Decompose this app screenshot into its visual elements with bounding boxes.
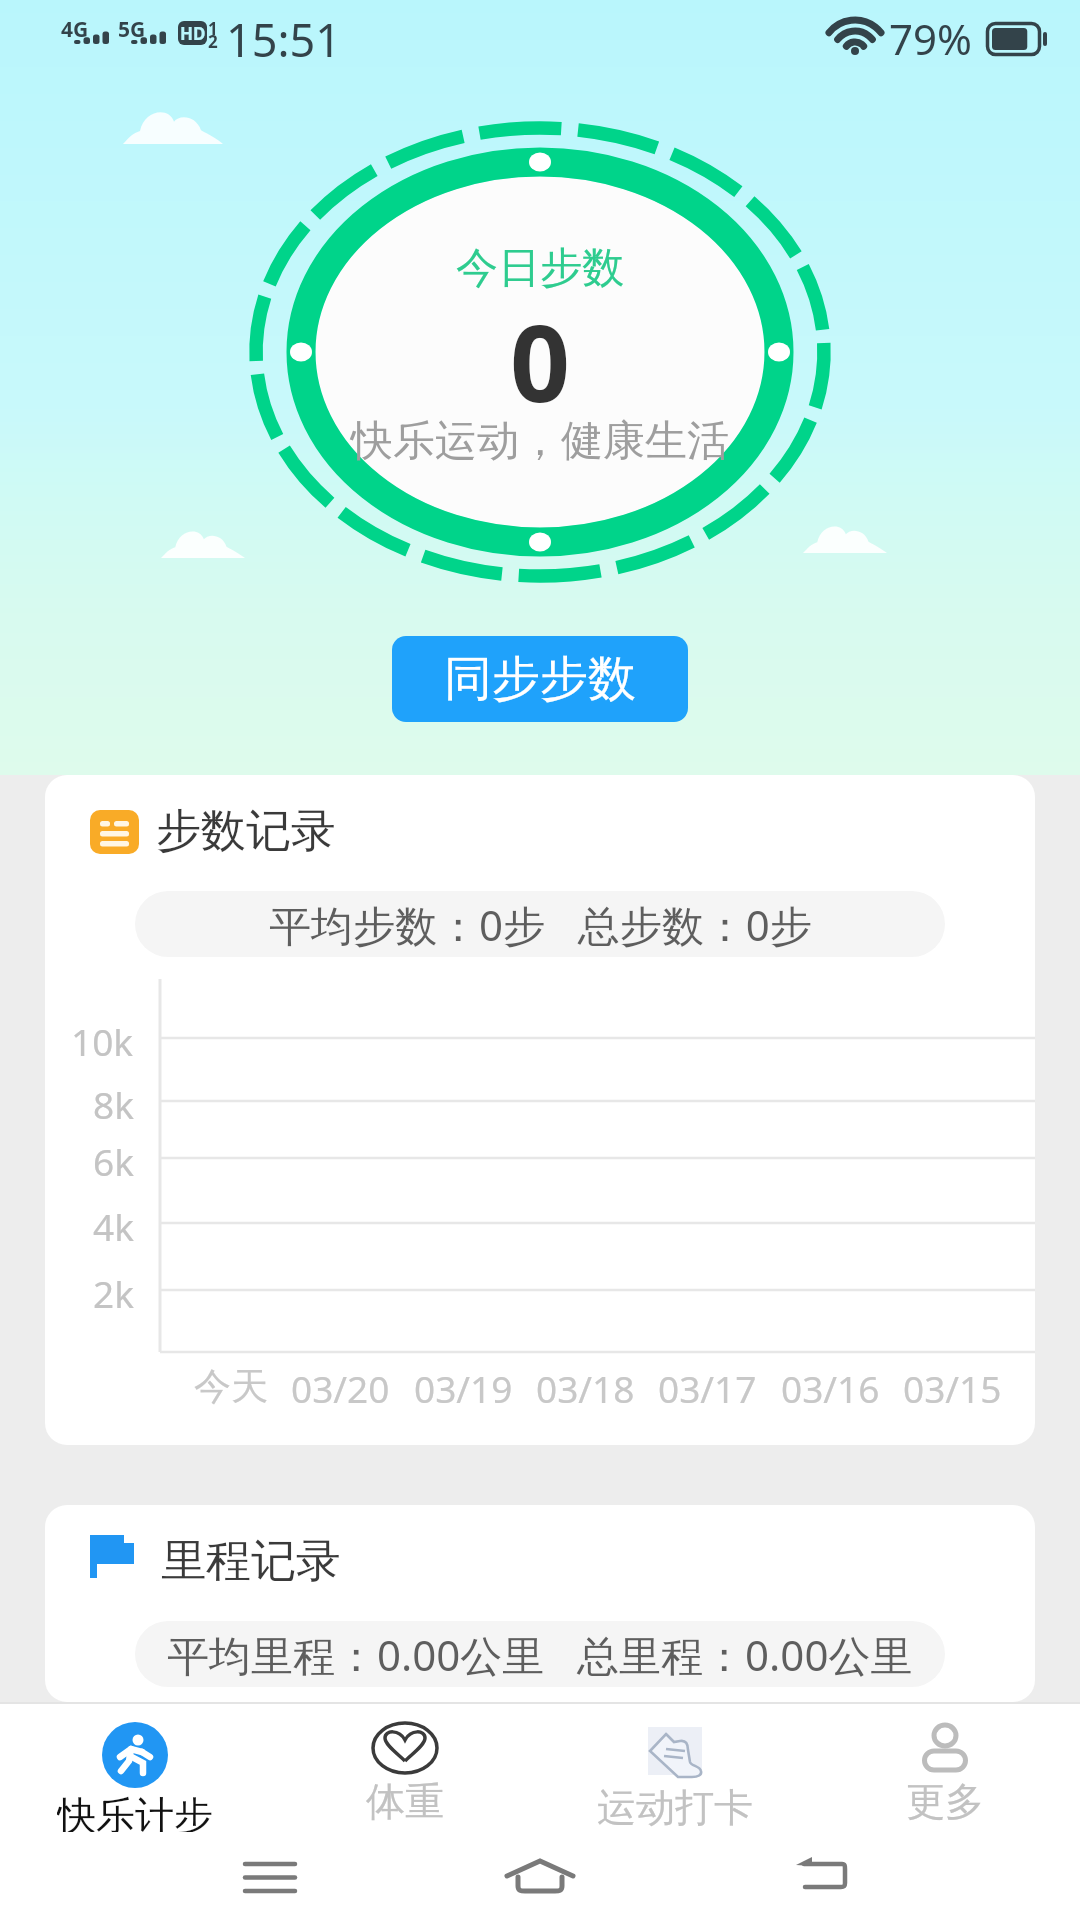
staticText: 今天 bbox=[194, 1363, 268, 1410]
staticText: 平均步数：0步 总步数：0步 bbox=[269, 896, 812, 953]
button[interactable]: Home bbox=[405, 1832, 675, 1920]
staticText: 4k bbox=[93, 1201, 134, 1251]
button[interactable]: 更多 bbox=[810, 1704, 1080, 1832]
staticText: 2 bbox=[208, 30, 218, 53]
staticText: 今日步数 bbox=[456, 242, 624, 295]
staticText: 2k bbox=[93, 1268, 134, 1318]
staticText: 03/17 bbox=[658, 1363, 757, 1413]
button[interactable]: Back bbox=[687, 1832, 957, 1920]
staticText: 03/15 bbox=[903, 1363, 1002, 1413]
button[interactable]: 同步步数 bbox=[392, 636, 688, 722]
staticText: 1 bbox=[208, 17, 218, 40]
staticText: 更多 bbox=[906, 1777, 984, 1826]
staticText: 03/18 bbox=[536, 1363, 635, 1413]
staticText: 15:51 bbox=[226, 9, 342, 70]
staticText: 5G bbox=[118, 15, 146, 44]
staticText: 平均里程：0.00公里 总里程：0.00公里 bbox=[167, 1626, 913, 1683]
button[interactable]: 体重 bbox=[270, 1704, 540, 1832]
staticText: 运动打卡 bbox=[597, 1783, 753, 1832]
staticText: 同步步数 bbox=[444, 649, 636, 709]
staticText: 里程记录 bbox=[161, 1533, 341, 1590]
staticText: 体重 bbox=[366, 1777, 444, 1826]
staticText: 8k bbox=[93, 1079, 134, 1129]
staticText: 4G bbox=[61, 15, 89, 44]
staticText: 03/16 bbox=[781, 1363, 880, 1413]
button[interactable]: Recents bbox=[135, 1832, 405, 1920]
staticText: 03/20 bbox=[291, 1363, 390, 1413]
staticText: 快乐运动，健康生活 bbox=[351, 415, 729, 468]
staticText: 03/19 bbox=[414, 1363, 513, 1413]
staticText: 79% bbox=[889, 10, 972, 67]
staticText: HD bbox=[180, 22, 206, 45]
staticText: 0 bbox=[510, 290, 571, 410]
staticText: 步数记录 bbox=[156, 803, 336, 860]
button[interactable]: 快乐计步 bbox=[0, 1704, 270, 1832]
button[interactable]: 运动打卡 bbox=[540, 1704, 810, 1832]
staticText: 快乐计步 bbox=[57, 1791, 213, 1832]
staticText: 10k bbox=[71, 1016, 134, 1066]
staticText: 6k bbox=[93, 1136, 134, 1186]
